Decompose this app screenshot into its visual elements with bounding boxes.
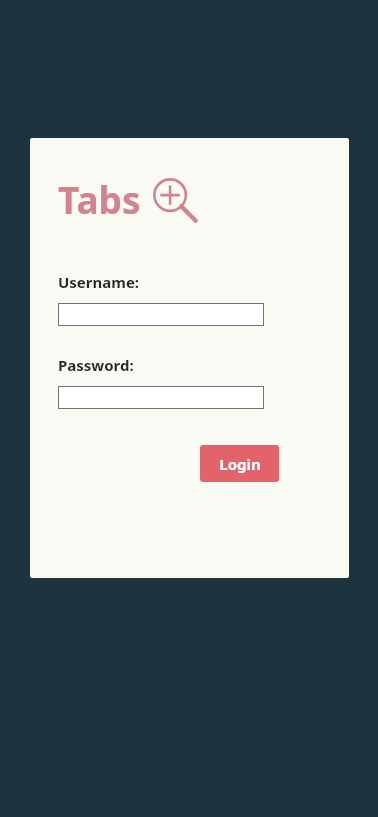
staticText: Login: [219, 454, 261, 474]
staticText: Password:: [58, 355, 134, 375]
staticText: Tabs: [58, 174, 141, 224]
button[interactable]: Text input: [58, 303, 264, 326]
button[interactable]: Login: [200, 445, 279, 482]
staticText: Username:: [58, 272, 140, 292]
button[interactable]: Tabs, zoom in: [58, 174, 199, 224]
button[interactable]: Text input: [58, 386, 264, 409]
